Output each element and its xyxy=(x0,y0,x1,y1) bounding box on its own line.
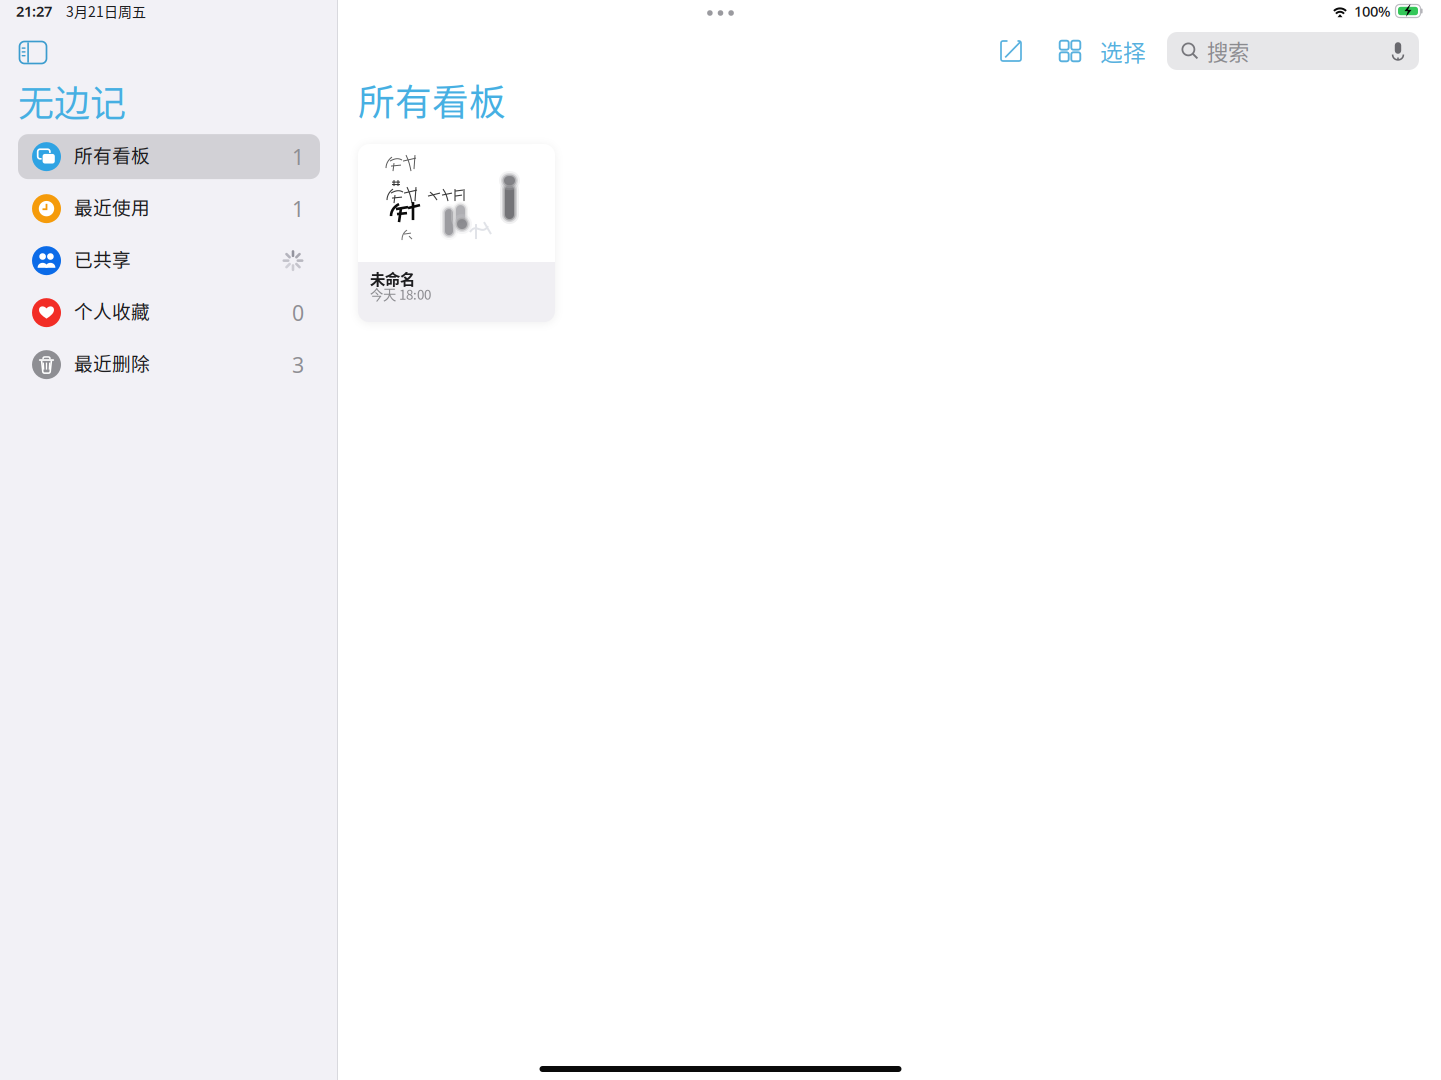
staticText: 3 xyxy=(292,350,304,379)
staticText: 所有看板 xyxy=(358,73,506,126)
button[interactable]: 所有看板 xyxy=(18,134,320,179)
staticText: 1 xyxy=(292,194,304,223)
button[interactable]: 最近使用 xyxy=(18,186,320,231)
staticText: 已共享 xyxy=(74,245,131,272)
button[interactable]: 未命名 xyxy=(358,144,555,322)
staticText: 100% xyxy=(1354,1,1390,21)
staticText: 今天 18:00 xyxy=(370,284,431,304)
staticText: 3月21日周五 xyxy=(66,1,146,21)
staticText: 无边记 xyxy=(18,75,126,127)
staticText: 0 xyxy=(292,298,304,327)
staticText: 1 xyxy=(292,142,304,171)
staticText: 搜索 xyxy=(1207,36,1249,66)
button[interactable]: 已共享 xyxy=(18,238,320,283)
button[interactable]: Grid View xyxy=(1054,35,1086,67)
button[interactable]: 个人收藏 xyxy=(18,290,320,335)
staticText: 21:27 xyxy=(16,1,52,21)
staticText: 最近使用 xyxy=(74,193,150,220)
button[interactable]: New Board xyxy=(995,35,1027,67)
button[interactable]: 搜索 xyxy=(1167,32,1419,70)
staticText: 最近删除 xyxy=(74,349,150,376)
button[interactable]: Hide Sidebar xyxy=(0,41,47,64)
staticText: 所有看板 xyxy=(74,141,150,168)
staticText: 个人收藏 xyxy=(74,297,150,324)
staticText: 选择 xyxy=(1100,35,1146,67)
button[interactable]: 最近删除 xyxy=(18,342,320,387)
staticText: 未命名 xyxy=(370,267,415,289)
button[interactable]: 选择 xyxy=(1100,35,1146,67)
